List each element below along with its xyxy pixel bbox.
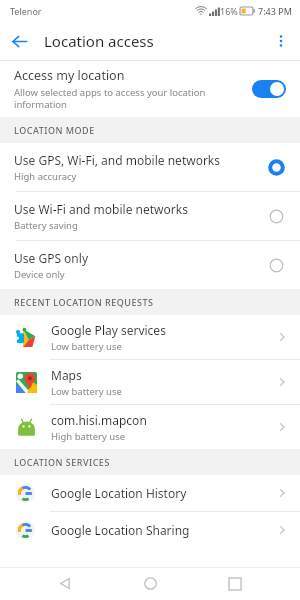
button[interactable]: com.hisi.mapcon [0, 405, 300, 449]
button[interactable]: Back [0, 22, 38, 60]
staticText: Google Location Sharing [51, 522, 276, 538]
staticText: 7:43 PM [258, 5, 292, 17]
staticText: RECENT LOCATION REQUESTS [14, 296, 154, 308]
button[interactable]: Use GPS only [0, 241, 300, 289]
staticText: Use Wi-Fi and mobile networks [14, 201, 188, 217]
button[interactable]: Use Wi-Fi and mobile networks [0, 192, 300, 240]
staticText: High accuracy [14, 170, 77, 183]
button[interactable]: Back [45, 567, 85, 600]
staticText: Battery saving [14, 219, 78, 232]
button[interactable]: Recents [215, 567, 255, 600]
staticText: Device only [14, 268, 65, 281]
staticText: Low battery use [51, 385, 122, 398]
staticText: Allow selected apps to access your locat… [14, 86, 242, 111]
staticText: Google Play services [51, 322, 166, 338]
staticText: Location access [44, 31, 154, 51]
staticText: Low battery use [51, 340, 122, 353]
staticText: Maps [51, 367, 82, 383]
button[interactable]: Maps [0, 360, 300, 404]
button[interactable]: Use GPS, Wi-Fi, and mobile networks [0, 143, 300, 191]
staticText: Use GPS, Wi-Fi, and mobile networks [14, 152, 221, 168]
button[interactable]: More options [262, 22, 300, 60]
staticText: Google Location History [51, 485, 276, 501]
staticText: LOCATION MODE [14, 124, 95, 136]
button[interactable]: Google Location Sharing [0, 512, 300, 548]
staticText: Use GPS only [14, 250, 89, 266]
staticText: Access my location [14, 67, 125, 84]
staticText: LOCATION SERVICES [14, 456, 110, 468]
button[interactable]: Google Play services [0, 315, 300, 359]
staticText: Telenor [10, 5, 42, 17]
button[interactable]: Google Location History [0, 475, 300, 511]
staticText: com.hisi.mapcon [51, 412, 147, 428]
button[interactable]: Home [130, 567, 170, 600]
button[interactable]: Access my location [0, 61, 300, 117]
staticText: High battery use [51, 430, 126, 443]
staticText: 16% [220, 5, 238, 17]
